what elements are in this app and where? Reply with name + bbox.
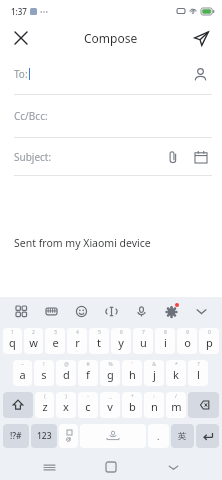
button[interactable]: Enter — [196, 424, 219, 448]
staticText: l — [197, 367, 200, 382]
button[interactable]: Hide keyboard — [192, 302, 210, 320]
button[interactable]: Backspace — [188, 392, 219, 418]
staticText: z — [42, 399, 48, 414]
staticText: j — [153, 367, 156, 382]
staticText: ? — [197, 361, 200, 368]
button[interactable]: 5 — [89, 328, 109, 354]
button[interactable]: To: — [0, 54, 222, 94]
button[interactable]: 0 — [199, 328, 219, 354]
staticText: ! — [43, 361, 45, 368]
staticText: n — [151, 399, 158, 414]
staticText: 123 — [37, 430, 52, 442]
button[interactable]: Add contact — [188, 62, 212, 86]
staticText: 0 — [208, 329, 211, 336]
button[interactable]: ~ — [13, 360, 32, 386]
button[interactable]: ? — [188, 360, 208, 386]
button[interactable]: @ — [59, 424, 78, 448]
button[interactable]: Settings — [162, 302, 180, 320]
staticText: - — [87, 393, 89, 400]
staticText: d — [63, 367, 70, 382]
button[interactable]: Back — [160, 454, 186, 480]
staticText: t — [97, 335, 101, 350]
staticText: s — [41, 367, 47, 382]
staticText: v — [107, 399, 113, 414]
button[interactable]: ! — [34, 360, 54, 386]
staticText: h — [129, 367, 136, 382]
staticText: @ — [66, 435, 72, 443]
button[interactable]: Keyboard layout — [42, 302, 60, 320]
staticText: 8 — [164, 329, 167, 336]
staticText: f — [86, 367, 90, 382]
button[interactable]: - — [78, 392, 98, 418]
button[interactable]: & — [144, 360, 164, 386]
button[interactable]: ( — [35, 392, 54, 418]
staticText: / — [175, 393, 177, 400]
staticText: 5 — [98, 329, 101, 336]
button[interactable]: Recents — [36, 454, 62, 480]
button[interactable]: 123 — [31, 424, 57, 448]
button[interactable]: Emoji — [72, 302, 90, 320]
button[interactable]: Schedule send — [190, 146, 212, 168]
staticText: 1:37 — [11, 6, 27, 17]
staticText: u — [140, 335, 147, 350]
staticText: 2 — [32, 329, 35, 336]
button[interactable]: # — [78, 360, 98, 386]
staticText: a — [19, 367, 26, 382]
button[interactable]: % — [100, 360, 120, 386]
button[interactable]: Attach file — [162, 146, 184, 168]
staticText: . — [157, 430, 160, 442]
button[interactable]: Close — [8, 25, 34, 51]
staticText: g — [107, 367, 114, 382]
button[interactable]: 4 — [67, 328, 87, 354]
button[interactable]: Voice input — [132, 302, 150, 320]
button[interactable]: @ — [56, 360, 76, 386]
button[interactable]: 3 — [45, 328, 65, 354]
button[interactable]: 6 — [111, 328, 131, 354]
button[interactable]: ' — [122, 360, 142, 386]
staticText: 9 — [186, 329, 189, 336]
button[interactable]: _ — [100, 392, 120, 418]
staticText: e — [52, 335, 59, 350]
button[interactable]: Home — [98, 454, 124, 480]
staticText: 3 — [54, 329, 57, 336]
staticText: Cc/Bcc: — [14, 109, 48, 123]
staticText: & — [152, 361, 156, 368]
staticText: % — [108, 361, 113, 368]
button[interactable]: Cc/Bcc: — [0, 95, 222, 137]
staticText: i — [164, 335, 167, 350]
button[interactable]: Text editing — [102, 302, 120, 320]
staticText: ) — [65, 393, 67, 400]
button[interactable]: Send — [188, 25, 214, 51]
staticText: + — [131, 393, 134, 400]
button[interactable]: !?# — [3, 424, 29, 448]
staticText: _ — [109, 393, 112, 400]
button[interactable]: 2 — [24, 328, 43, 354]
button[interactable]: 7 — [133, 328, 153, 354]
button[interactable]: Subject: — [0, 138, 222, 175]
staticText: m — [171, 399, 182, 414]
staticText: 6 — [120, 329, 123, 336]
button[interactable]: : — [144, 392, 164, 418]
staticText: Subject: — [14, 150, 52, 164]
button[interactable]: ) — [56, 392, 76, 418]
button[interactable]: 1 — [3, 328, 22, 354]
button[interactable]: 9 — [177, 328, 197, 354]
button[interactable]: * — [166, 360, 186, 386]
button[interactable]: 8 — [155, 328, 175, 354]
staticText: @ — [64, 361, 69, 368]
staticText: : — [153, 393, 155, 400]
button[interactable]: Shift — [3, 392, 33, 418]
staticText: o — [184, 335, 191, 350]
staticText: 4 — [76, 329, 79, 336]
button[interactable]: / — [166, 392, 186, 418]
staticText: !?# — [10, 430, 22, 442]
staticText: p — [206, 335, 213, 350]
staticText: To: — [14, 67, 28, 81]
button[interactable]: . — [148, 424, 169, 448]
button[interactable]: + — [122, 392, 142, 418]
staticText: # — [86, 361, 90, 368]
staticText: b — [129, 399, 136, 414]
button[interactable]: Apps — [12, 302, 30, 320]
button[interactable]: 英 — [171, 424, 194, 448]
button[interactable]: Space — [80, 424, 146, 448]
